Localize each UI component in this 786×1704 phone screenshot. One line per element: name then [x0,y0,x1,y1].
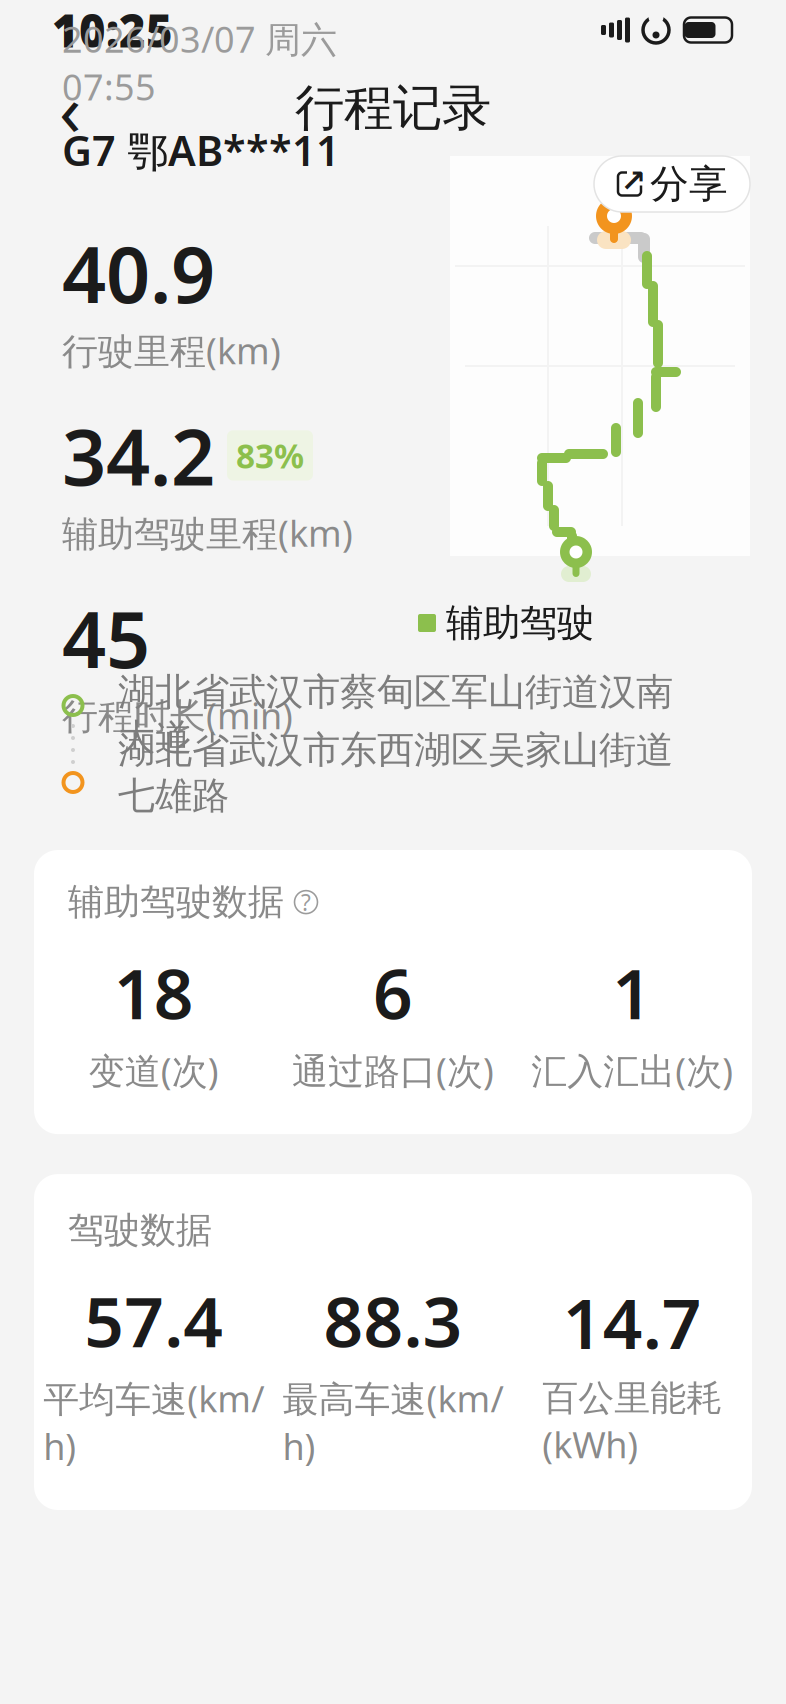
button[interactable]: 辅助驾驶数据说明 [291,887,321,917]
staticText: 6 [373,946,413,1038]
button[interactable]: ↗ [594,156,750,212]
staticText: 百公里能耗(kWh) [542,1376,722,1468]
staticText: 行程记录 [295,78,491,138]
staticText: 分享 [650,160,728,208]
staticText: 湖北省武汉市东西湖区吴家山街道七雄路 [118,727,673,819]
staticText: 45 [62,587,150,689]
staticText: 14.7 [563,1276,702,1368]
staticText: 57.4 [84,1274,223,1366]
staticText: 1 [612,946,652,1038]
staticText: 平均车速(km/h) [43,1374,264,1470]
staticText: ‹ [59,60,81,156]
staticText: 辅助驾驶 [446,600,594,646]
staticText: 通过路口(次) [292,1046,494,1094]
staticText: 湖北省武汉市蔡甸区军山街道汉南大道 [118,669,673,761]
staticText: 10:25 [52,0,173,60]
staticText: 行驶里程(km) [62,326,281,374]
staticText: 88.3 [323,1274,462,1366]
staticText: 汇入汇出(次) [531,1046,733,1094]
staticText: ? [301,887,311,917]
staticText: 83% [236,433,304,478]
staticText: G7 鄂AB***11 [62,122,340,178]
staticText: 变道(次) [89,1046,219,1094]
staticText: 驾驶数据 [68,1208,212,1252]
staticText: 辅助驾驶里程(km) [62,509,353,557]
button[interactable]: Back [30,68,110,148]
staticText: 行程时长(min) [62,691,293,739]
staticText: 34.2 [62,404,215,507]
staticText: 最高车速(km/h) [282,1374,503,1470]
staticText: 辅助驾驶数据 [68,880,284,924]
staticText: ↗ [620,164,646,198]
staticText: 2026/03/07 周六 07:55 [62,15,337,110]
staticText: 40.9 [62,222,215,324]
staticText: 18 [114,946,194,1038]
